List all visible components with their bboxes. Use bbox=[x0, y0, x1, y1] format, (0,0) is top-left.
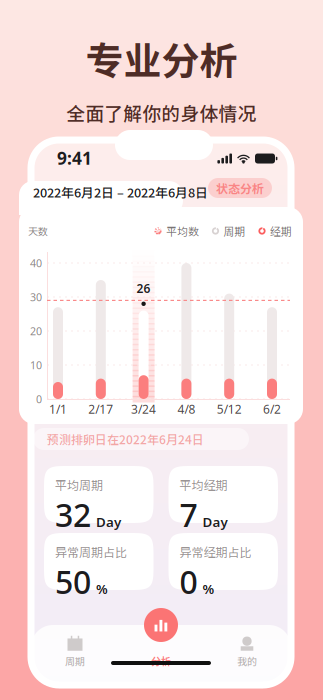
staticText: 5/12 bbox=[217, 401, 242, 417]
staticText: 2/17 bbox=[88, 401, 113, 417]
button[interactable]: 异常经期占比 bbox=[168, 533, 278, 590]
button[interactable]: 我的 bbox=[209, 629, 285, 675]
staticText: 0 bbox=[179, 560, 197, 603]
staticText: 专业分析 bbox=[85, 31, 237, 86]
button[interactable]: 平均经期 bbox=[168, 466, 278, 523]
staticText: 平均经期 bbox=[179, 476, 227, 493]
staticText: 预测排卵日在2022年6月24日 bbox=[47, 430, 204, 448]
button[interactable]: 分析 bbox=[123, 629, 199, 675]
staticText: 30 bbox=[30, 290, 42, 304]
staticText: 0 bbox=[36, 392, 42, 406]
button[interactable]: 状态分析 bbox=[208, 178, 272, 198]
staticText: 异常经期占比 bbox=[179, 543, 251, 560]
staticText: Day bbox=[96, 513, 121, 531]
staticText: 天数 bbox=[28, 224, 48, 238]
staticText: 全面了解你的身体情况 bbox=[66, 99, 256, 126]
staticText: 2022年6月2日 – 2022年6月8日 bbox=[33, 183, 208, 201]
staticText: 50 bbox=[55, 560, 91, 603]
staticText: 32 bbox=[55, 493, 91, 536]
button[interactable]: 周期 bbox=[37, 629, 113, 675]
staticText: 平均周期 bbox=[55, 476, 103, 493]
staticText: 周期 bbox=[223, 223, 245, 239]
staticText: 经期 bbox=[270, 223, 292, 239]
staticText: 9:41 bbox=[57, 146, 92, 169]
staticText: 分析 bbox=[151, 654, 171, 668]
staticText: 40 bbox=[30, 256, 42, 270]
button[interactable]: 分析 bbox=[144, 608, 178, 642]
staticText: 26 bbox=[137, 280, 151, 296]
staticText: 异常周期占比 bbox=[55, 543, 127, 560]
staticText: 状态分析 bbox=[216, 179, 264, 197]
button[interactable]: 异常周期占比 bbox=[44, 533, 153, 590]
staticText: 我的 bbox=[237, 654, 257, 668]
staticText: 1/1 bbox=[49, 401, 67, 417]
staticText: 周期 bbox=[65, 654, 85, 668]
staticText: 10 bbox=[30, 358, 42, 372]
staticText: 6/2 bbox=[263, 401, 281, 417]
staticText: 4/8 bbox=[177, 401, 195, 417]
button[interactable]: 平均周期 bbox=[44, 466, 153, 523]
staticText: 20 bbox=[30, 324, 42, 338]
staticText: 3/24 bbox=[131, 401, 156, 417]
staticText: 平均数 bbox=[166, 223, 199, 239]
staticText: % bbox=[96, 580, 108, 598]
staticText: Day bbox=[202, 513, 227, 531]
staticText: 7 bbox=[179, 493, 197, 536]
staticText: % bbox=[202, 580, 214, 598]
